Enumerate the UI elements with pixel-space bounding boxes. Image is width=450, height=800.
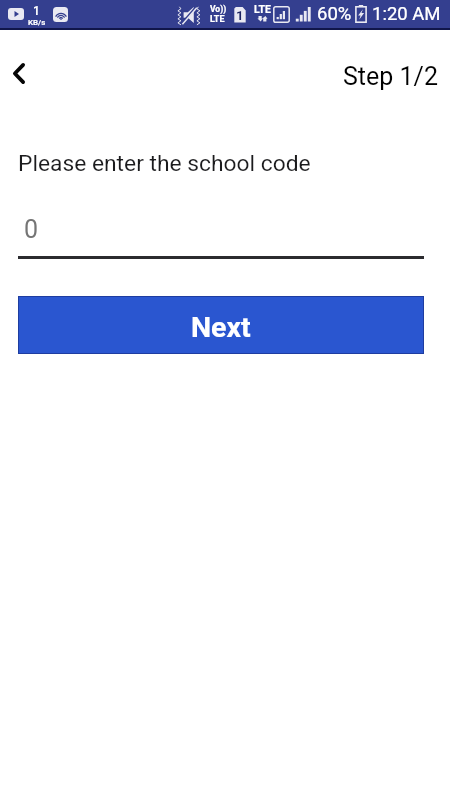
button[interactable]: 0 (18, 205, 424, 259)
staticText: 1 (236, 8, 244, 23)
button[interactable]: Next (19, 297, 423, 353)
staticText: Vo)) (210, 4, 227, 14)
staticText: 60% (317, 3, 352, 25)
staticText: LTE (254, 3, 271, 15)
staticText: 0 (24, 215, 39, 244)
staticText: 1:20 AM (372, 3, 441, 25)
staticText: Step 1/2 (343, 62, 438, 91)
staticText: LTE (210, 14, 225, 25)
staticText: 1 (33, 4, 40, 18)
staticText: Please enter the school code (18, 150, 311, 177)
staticText: KB/s (28, 18, 46, 27)
button[interactable]: Back (0, 51, 41, 95)
staticText: Next (191, 311, 251, 344)
